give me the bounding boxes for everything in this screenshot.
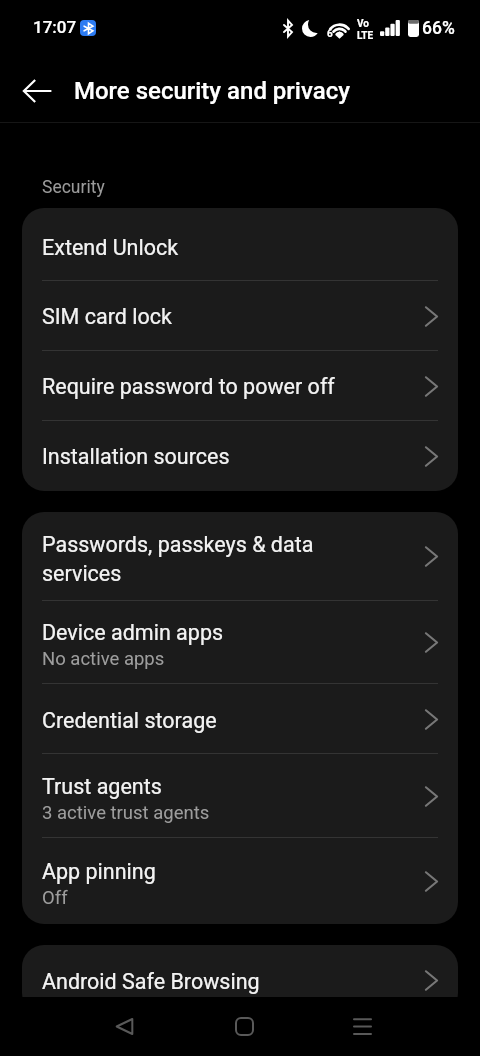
staticText: No active apps <box>42 648 165 670</box>
staticText: 3 active trust agents <box>42 802 210 824</box>
button[interactable]: Android Safe Browsing <box>22 945 458 1015</box>
button[interactable]: Home <box>214 997 274 1056</box>
button[interactable]: Back <box>94 997 154 1056</box>
staticText: SIM card lock <box>42 304 172 329</box>
staticText: More security and privacy <box>74 77 350 105</box>
staticText: Off <box>42 887 68 909</box>
staticText: 66% <box>422 18 455 39</box>
button[interactable]: App pinning <box>22 838 458 924</box>
staticText: 17:07 <box>33 17 77 37</box>
staticText: Require password to power off <box>42 374 335 399</box>
staticText: App pinning <box>42 859 156 884</box>
button[interactable]: Installation sources <box>22 421 458 491</box>
button[interactable]: Extend Unlock <box>22 208 458 281</box>
button[interactable]: Navigate up <box>11 65 63 117</box>
button[interactable]: Passwords, passkeys & data services <box>22 512 458 601</box>
button[interactable]: Require password to power off <box>22 351 458 421</box>
button[interactable]: Trust agents <box>22 754 458 838</box>
staticText: Trust agents <box>42 774 162 799</box>
button[interactable]: Device admin apps <box>22 601 458 684</box>
staticText: Android Safe Browsing <box>42 969 260 994</box>
button[interactable]: Credential storage <box>22 684 458 754</box>
staticText: Security <box>42 177 105 198</box>
staticText: Installation sources <box>42 444 230 469</box>
staticText: Extend Unlock <box>42 235 179 260</box>
staticText: 6 <box>327 28 333 40</box>
button[interactable]: SIM card lock <box>22 281 458 351</box>
button[interactable]: Recent apps <box>332 997 392 1056</box>
staticText: Device admin apps <box>42 620 224 645</box>
staticText: Passwords, passkeys & data services <box>42 532 314 586</box>
staticText: Vo <box>357 18 369 30</box>
staticText: LTE <box>357 30 374 42</box>
staticText: Credential storage <box>42 708 217 733</box>
